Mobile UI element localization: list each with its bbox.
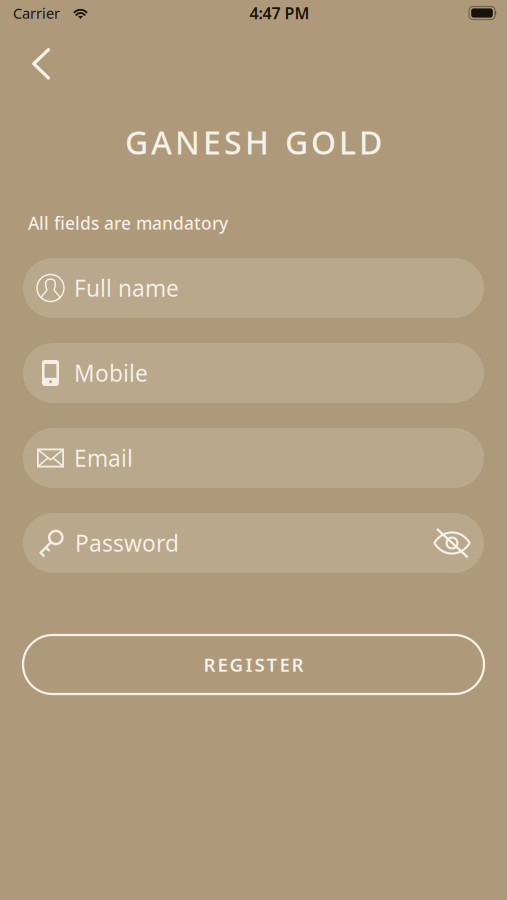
button[interactable]: Mobile xyxy=(23,343,484,403)
button[interactable]: Password xyxy=(23,513,484,573)
staticText: Full name xyxy=(74,273,179,303)
staticText: Mobile xyxy=(74,358,148,388)
staticText: G A N E S H G O L D xyxy=(125,121,382,163)
button[interactable]: Full name xyxy=(23,258,484,318)
staticText: 4:47 PM xyxy=(249,2,309,24)
button[interactable]: Email xyxy=(23,428,484,488)
staticText: Carrier xyxy=(13,3,60,23)
staticText: Password xyxy=(75,528,179,558)
staticText: Email xyxy=(74,443,133,473)
staticText: All fields are mandatory xyxy=(28,211,228,234)
button[interactable]: R E G I S T E R xyxy=(23,635,484,694)
button[interactable]: Back xyxy=(0,26,66,91)
staticText: R E G I S T E R xyxy=(203,652,303,677)
